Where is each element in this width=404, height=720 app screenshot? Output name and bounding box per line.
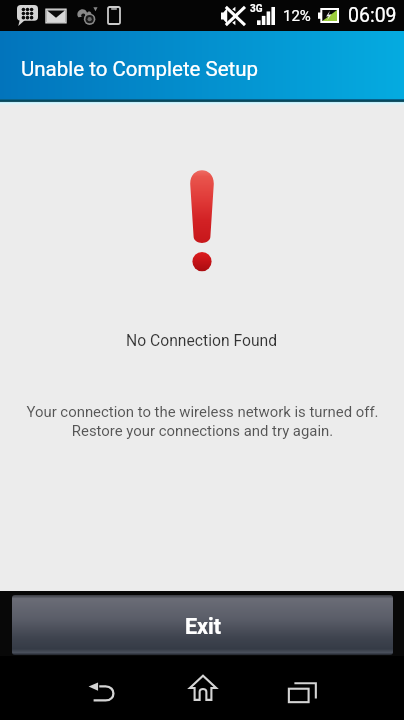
button[interactable]: Home (169, 664, 237, 710)
staticText: 12% (283, 7, 311, 25)
staticText: 3G (250, 3, 263, 15)
staticText: 06:09 (348, 4, 397, 27)
staticText: No Connection Found (126, 331, 278, 349)
button[interactable]: Back (68, 669, 136, 715)
staticText: Your connection to the wireless network … (26, 403, 379, 440)
staticText: Exit (185, 614, 221, 639)
button[interactable]: Recent apps (268, 669, 336, 715)
staticText: Unable to Complete Setup (21, 57, 259, 81)
button[interactable]: Exit (12, 595, 393, 655)
